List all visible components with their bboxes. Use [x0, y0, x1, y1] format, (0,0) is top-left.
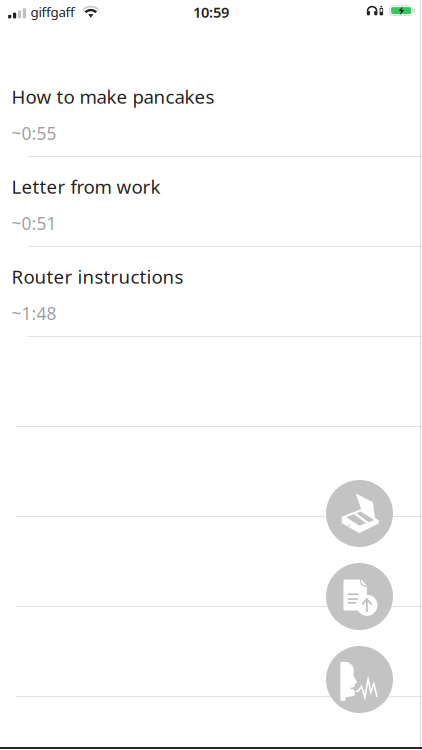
staticText: Router instructions	[11, 264, 183, 289]
staticText: giffgaff	[31, 3, 75, 21]
button[interactable]: Record voice note	[326, 646, 393, 713]
staticText: Letter from work	[11, 174, 160, 199]
button[interactable]: Router instructions	[0, 247, 422, 337]
staticText: ~1:48	[11, 302, 56, 325]
button[interactable]: How to make pancakes	[0, 67, 422, 157]
staticText: How to make pancakes	[11, 84, 214, 109]
button[interactable]: Upload document	[326, 563, 393, 630]
staticText: ~0:51	[11, 212, 56, 235]
button[interactable]: Scan document	[326, 480, 393, 547]
staticText: 10:59	[193, 2, 229, 22]
button[interactable]: Letter from work	[0, 157, 422, 247]
staticText: ~0:55	[11, 122, 56, 145]
